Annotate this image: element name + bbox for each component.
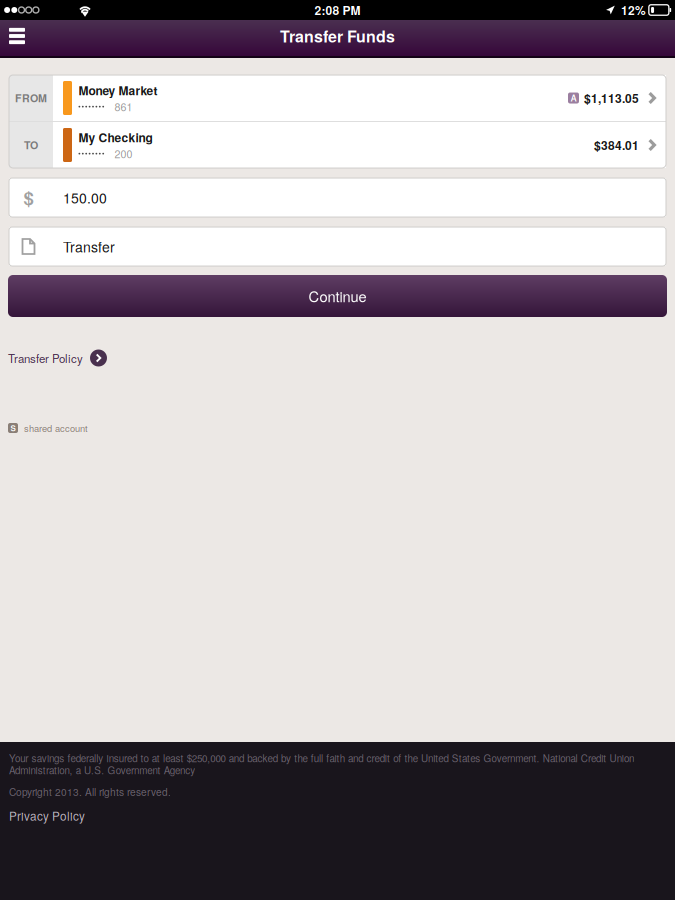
button[interactable]: TO [9,122,666,168]
staticText: 2:08 PM [314,1,360,19]
staticText: Privacy Policy [9,807,85,824]
staticText: Money Market [78,82,157,99]
staticText: A [570,92,576,104]
staticText: 200 [114,146,132,161]
staticText: Continue [308,285,366,306]
staticText: Copyright 2013. All rights reserved. [9,784,171,799]
staticText: My Checking [78,129,152,146]
staticText: $ [23,184,33,211]
staticText: $384.01 [594,136,639,154]
button[interactable]: Privacy Policy [9,799,85,824]
button[interactable]: Transfer Policy [0,347,675,369]
staticText: TO [24,137,38,153]
staticText: 12% [621,1,646,19]
staticText: Administration, a U.S. Government Agency [9,763,195,777]
staticText: $1,113.05 [584,89,639,107]
button[interactable]: Menu [0,20,34,56]
staticText: shared account [24,421,88,435]
staticText: FROM [15,90,47,106]
staticText: 150.00 [63,187,107,207]
staticText: 861 [114,99,132,114]
staticText: Transfer [63,236,115,256]
staticText: S [10,422,15,434]
button[interactable]: FROM [9,75,666,121]
staticText: Transfer Funds [280,24,395,47]
staticText: Your savings federally insured to at lea… [9,751,634,765]
staticText: Transfer Policy [8,350,83,366]
button[interactable]: Continue [8,275,667,317]
